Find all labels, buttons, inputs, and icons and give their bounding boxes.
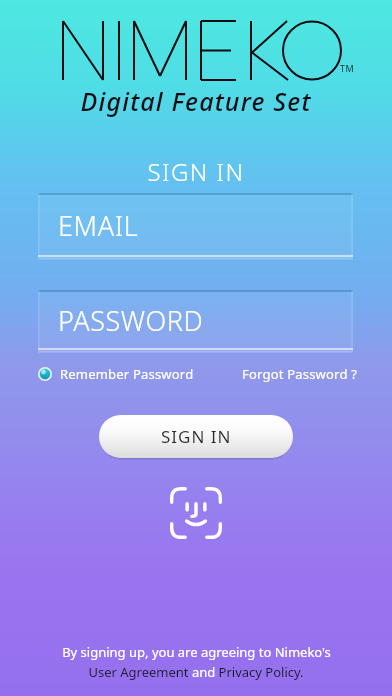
staticText: Digital Feature Set xyxy=(0,84,392,118)
button[interactable]: SIGN IN xyxy=(99,415,293,458)
staticText: SIGN IN xyxy=(0,155,392,188)
button[interactable]: PASSWORD xyxy=(38,290,353,350)
button[interactable]: EMAIL xyxy=(38,193,353,257)
button[interactable]: Remember Password xyxy=(36,362,196,386)
button[interactable]: Sign in with Face ID xyxy=(170,487,222,539)
staticText: By signing up, you are agreeing to Nimek… xyxy=(62,643,331,661)
staticText: TM xyxy=(340,62,355,74)
staticText: Forgot Password ? xyxy=(242,365,358,383)
staticText: PASSWORD xyxy=(58,302,204,339)
staticText: SIGN IN xyxy=(161,425,232,448)
staticText: Remember Password xyxy=(60,365,194,383)
button[interactable]: Forgot Password ? xyxy=(240,362,360,386)
staticText: EMAIL xyxy=(58,207,139,244)
button[interactable]: User Agreement and Privacy Policy. xyxy=(88,663,304,681)
